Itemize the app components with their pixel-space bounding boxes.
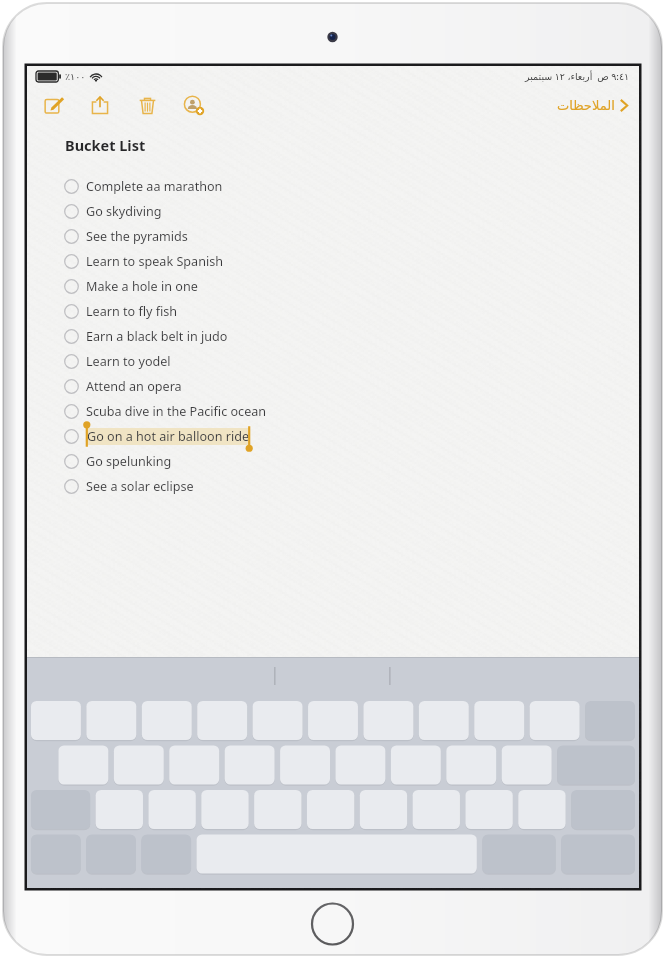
button[interactable]: Go skydiving [27, 199, 639, 224]
staticText: See the pyramids [86, 228, 188, 245]
button[interactable]: Learn to fly fish [27, 299, 639, 324]
button[interactable]: Scuba dive in the Pacific ocean [27, 399, 639, 424]
staticText: Make a hole in one [86, 278, 198, 295]
button[interactable]: Compose new note [40, 92, 66, 118]
staticText: Attend an opera [86, 378, 182, 395]
button[interactable]: See the pyramids [27, 224, 639, 249]
button[interactable]: Earn a black belt in judo [27, 324, 639, 349]
button[interactable]: Delete [134, 92, 160, 118]
button[interactable]: Complete aa marathon [27, 174, 639, 199]
button[interactable]: Share [87, 92, 113, 118]
staticText: ٩:٤١ ص أربعاء، ١٢ سبتمبر [525, 70, 630, 83]
button[interactable]: Attend an opera [27, 374, 639, 399]
staticText: See a solar eclipse [86, 478, 194, 495]
button[interactable]: See a solar eclipse [27, 474, 639, 499]
button[interactable]: الملاحظات [557, 97, 629, 114]
staticText: Scuba dive in the Pacific ocean [86, 403, 267, 420]
staticText: Learn to fly fish [86, 303, 178, 320]
button[interactable]: Go spelunking [27, 449, 639, 474]
staticText: ٪١٠٠ [65, 71, 86, 82]
staticText: Go skydiving [86, 203, 162, 220]
button[interactable]: Learn to yodel [27, 349, 639, 374]
staticText: الملاحظات [557, 98, 615, 113]
staticText: Go spelunking [86, 453, 172, 470]
staticText: Earn a black belt in judo [86, 328, 228, 345]
staticText: Bucket List [65, 135, 146, 155]
button[interactable]: Make a hole in one [27, 274, 639, 299]
staticText: Complete aa marathon [86, 178, 223, 195]
staticText: Learn to speak Spanish [86, 253, 223, 270]
button[interactable]: Learn to speak Spanish [27, 249, 639, 274]
button[interactable]: Add people [181, 92, 207, 118]
staticText: Learn to yodel [86, 353, 171, 370]
button[interactable]: Go on a hot air balloon ride [27, 424, 639, 449]
staticText: Go on a hot air balloon ride [87, 428, 249, 445]
